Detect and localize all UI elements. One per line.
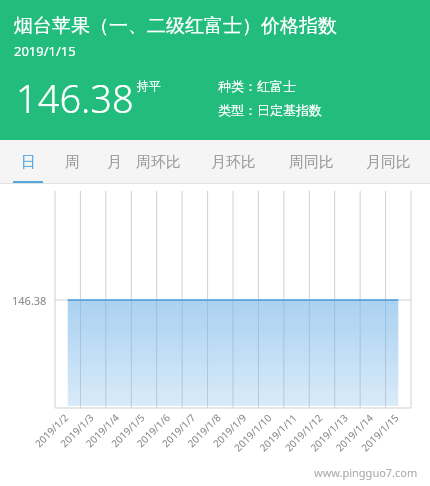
- button[interactable]: 月: [101, 140, 127, 184]
- staticText: 周: [65, 153, 80, 172]
- staticText: 种类：红富士: [218, 78, 296, 94]
- staticText: 类型：日定基指数: [218, 102, 322, 118]
- staticText: 日: [21, 153, 36, 172]
- staticText: 2019/1/15: [14, 42, 76, 60]
- staticText: 月同比: [366, 153, 411, 172]
- button[interactable]: 月环比: [207, 140, 259, 184]
- staticText: 持平: [137, 78, 161, 93]
- staticText: 月环比: [211, 153, 256, 172]
- staticText: 周同比: [289, 153, 334, 172]
- staticText: 月: [107, 153, 122, 172]
- button[interactable]: 月同比: [362, 140, 414, 184]
- button[interactable]: 日: [15, 140, 41, 184]
- button[interactable]: 周: [59, 140, 85, 184]
- button[interactable]: 周环比: [132, 140, 184, 184]
- button[interactable]: 周同比: [285, 140, 337, 184]
- staticText: 烟台苹果（一、二级红富士）价格指数: [14, 14, 337, 38]
- staticText: 146.38: [16, 72, 134, 124]
- staticText: 周环比: [136, 153, 181, 172]
